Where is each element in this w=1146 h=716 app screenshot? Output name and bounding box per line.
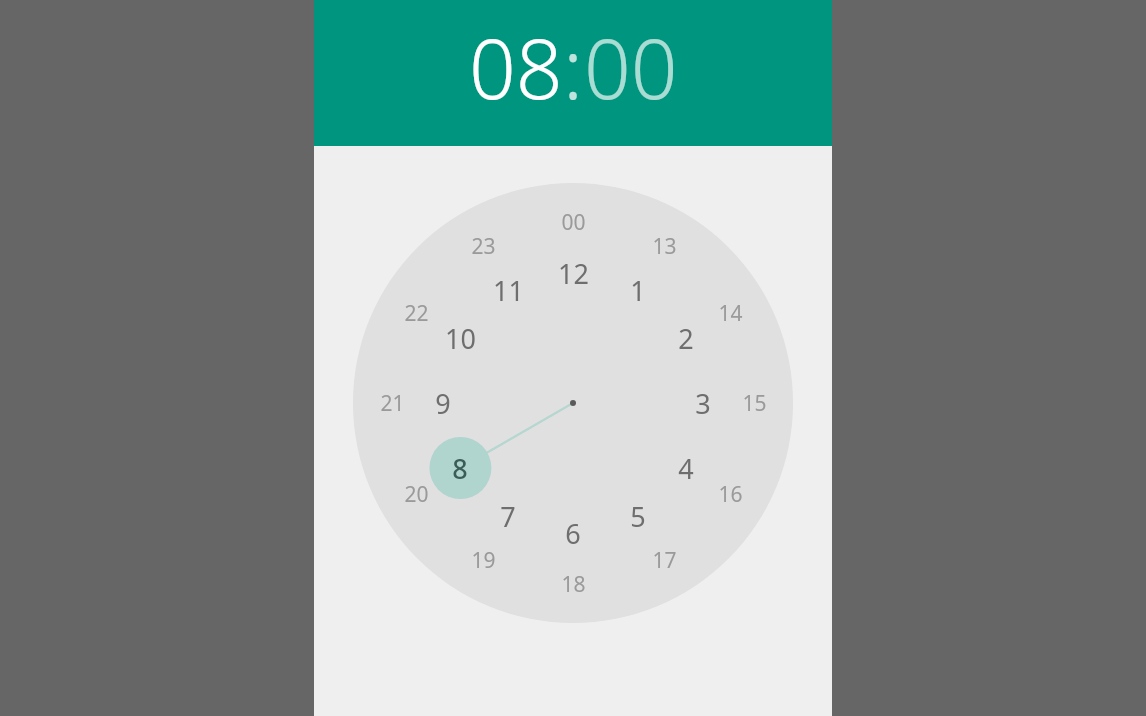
staticText: 17	[652, 546, 677, 575]
staticText: 8	[452, 450, 468, 487]
staticText: 00	[584, 11, 678, 123]
staticText: 18	[561, 570, 586, 599]
staticText: 5	[630, 498, 646, 535]
staticText: 12	[558, 255, 589, 292]
staticText: 1	[630, 272, 646, 309]
staticText: 10	[445, 320, 476, 357]
button[interactable]: Select minute	[584, 11, 678, 123]
button[interactable]: Clock hour picker	[353, 183, 793, 623]
staticText: 3	[695, 385, 711, 422]
staticText: 2	[678, 320, 694, 357]
staticText: 15	[742, 389, 767, 418]
button[interactable]: Select hour	[469, 11, 563, 123]
staticText: 16	[718, 480, 743, 509]
staticText: 00	[561, 208, 586, 237]
staticText: 20	[404, 480, 429, 509]
staticText: 21	[380, 389, 405, 418]
staticText: 08	[469, 11, 563, 123]
staticText: 13	[652, 232, 677, 261]
staticText: 14	[718, 299, 743, 328]
staticText: 22	[404, 299, 429, 328]
staticText: 9	[435, 385, 451, 422]
staticText: 23	[471, 232, 496, 261]
staticText: 7	[500, 498, 516, 535]
staticText: 11	[493, 272, 524, 309]
staticText: 6	[565, 515, 581, 552]
staticText: 4	[678, 450, 694, 487]
staticText: 19	[471, 546, 496, 575]
staticText: :	[563, 11, 584, 123]
